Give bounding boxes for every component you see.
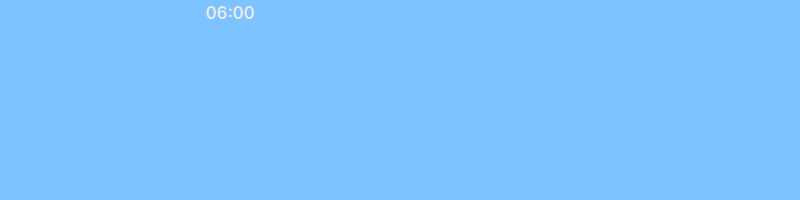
- staticText: 06:00: [205, 3, 254, 23]
